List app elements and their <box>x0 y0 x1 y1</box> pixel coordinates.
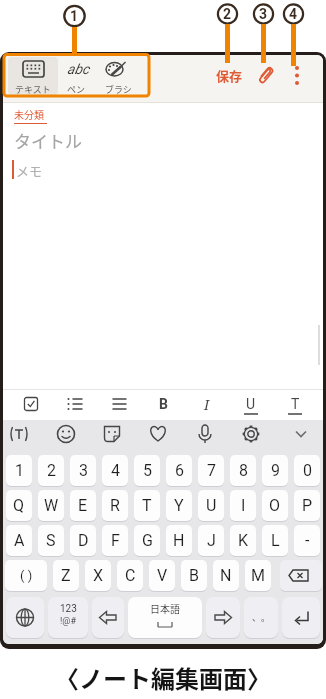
staticText: D <box>78 531 89 550</box>
button[interactable]: 7 <box>198 455 224 486</box>
staticText: Q <box>13 496 25 515</box>
button[interactable]: I <box>230 490 256 521</box>
button[interactable]: 9 <box>262 455 288 486</box>
button[interactable] <box>192 421 218 447</box>
button[interactable]: 0 <box>294 455 320 486</box>
button[interactable]: 保存 <box>206 65 252 85</box>
button[interactable]: S <box>38 525 64 556</box>
button[interactable] <box>6 597 44 638</box>
button[interactable]: K <box>230 525 256 556</box>
button[interactable]: 5 <box>134 455 160 486</box>
button[interactable]: T <box>134 490 160 521</box>
button[interactable] <box>17 391 45 417</box>
button[interactable]: 未分類 <box>14 107 58 121</box>
button[interactable] <box>105 391 133 417</box>
button[interactable] <box>92 597 124 638</box>
button[interactable]: 6 <box>166 455 192 486</box>
button[interactable] <box>282 597 320 638</box>
button[interactable]: 3 <box>70 455 96 486</box>
staticText: M <box>251 566 265 585</box>
staticText: abc <box>67 61 90 77</box>
button[interactable]: B <box>149 392 177 416</box>
staticText: B <box>189 566 199 585</box>
button[interactable]: 8 <box>230 455 256 486</box>
button[interactable]: X <box>85 560 111 591</box>
button[interactable]: 、。 <box>244 597 278 638</box>
button[interactable]: L <box>262 525 288 556</box>
button[interactable]: D <box>70 525 96 556</box>
button[interactable] <box>61 391 89 417</box>
staticText: 0 <box>303 461 312 480</box>
button[interactable]: C <box>117 560 143 591</box>
button[interactable] <box>99 421 125 447</box>
button[interactable]: V <box>149 560 175 591</box>
staticText: X <box>93 566 104 585</box>
button[interactable] <box>286 63 308 89</box>
button[interactable] <box>206 597 240 638</box>
button[interactable]: A <box>6 525 32 556</box>
staticText: 1 <box>15 461 24 480</box>
staticText: U <box>246 396 256 412</box>
button[interactable]: ペン <box>51 82 101 96</box>
button[interactable]: J <box>198 525 224 556</box>
button[interactable]: ブラシ <box>93 82 143 96</box>
button[interactable] <box>280 560 322 591</box>
button[interactable]: Q <box>6 490 32 521</box>
button[interactable] <box>145 421 171 447</box>
button[interactable]: Z <box>53 560 79 591</box>
button[interactable]: 4 <box>102 455 128 486</box>
button[interactable] <box>238 421 264 447</box>
button[interactable]: T <box>281 392 309 416</box>
button[interactable] <box>8 57 58 95</box>
button[interactable]: 2 <box>38 455 64 486</box>
staticText: F <box>111 531 120 550</box>
button[interactable]: M <box>245 560 271 591</box>
button[interactable]: G <box>134 525 160 556</box>
staticText: ( ) <box>20 568 33 583</box>
button[interactable]: 1 <box>6 455 32 486</box>
button[interactable] <box>48 597 88 638</box>
button[interactable]: U <box>237 392 265 416</box>
staticText: O <box>269 496 281 515</box>
button[interactable]: U <box>198 490 224 521</box>
staticText: タイトル <box>14 128 82 152</box>
staticText: 、。 <box>252 611 271 624</box>
staticText: Y <box>174 496 184 515</box>
button[interactable] <box>6 421 32 447</box>
staticText: 6 <box>175 461 184 480</box>
staticText: A <box>14 531 25 550</box>
staticText: H <box>173 531 185 550</box>
button[interactable]: O <box>262 490 288 521</box>
staticText: ペン <box>67 83 86 96</box>
staticText: 3 <box>79 461 88 480</box>
staticText: K <box>238 531 249 550</box>
staticText: 9 <box>271 461 280 480</box>
staticText: 4 <box>289 6 298 22</box>
button[interactable]: I <box>193 392 221 416</box>
staticText: 3 <box>259 6 268 22</box>
button[interactable]: - <box>294 525 320 556</box>
button[interactable] <box>53 421 79 447</box>
button[interactable]: N <box>213 560 239 591</box>
button[interactable]: P <box>294 490 320 521</box>
button[interactable] <box>128 597 202 638</box>
button[interactable]: E <box>70 490 96 521</box>
staticText: V <box>157 566 168 585</box>
staticText: メモ <box>16 161 43 178</box>
button[interactable]: F <box>102 525 128 556</box>
staticText: I <box>204 395 210 414</box>
staticText: J <box>207 531 216 550</box>
button[interactable]: R <box>102 490 128 521</box>
staticText: !@# <box>60 616 76 627</box>
staticText: G <box>142 531 153 550</box>
button[interactable]: Y <box>166 490 192 521</box>
button[interactable]: H <box>166 525 192 556</box>
button[interactable] <box>284 421 310 447</box>
button[interactable]: ( ) <box>5 560 47 591</box>
button[interactable]: W <box>38 490 64 521</box>
button[interactable]: B <box>181 560 207 591</box>
staticText: 2 <box>223 6 232 22</box>
staticText: E <box>78 496 88 515</box>
button[interactable] <box>253 63 279 89</box>
staticText: 8 <box>239 461 248 480</box>
